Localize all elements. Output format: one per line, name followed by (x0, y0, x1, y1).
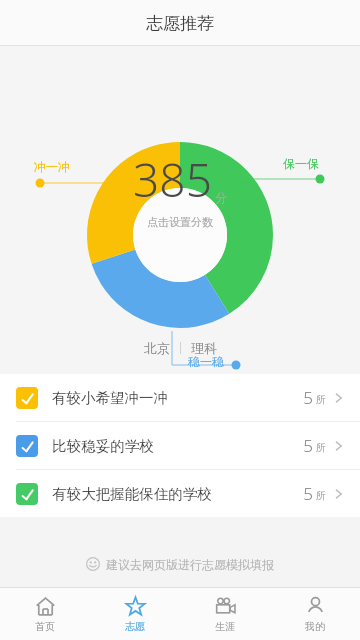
button[interactable]: 我的 (270, 588, 360, 640)
button[interactable]: 比较稳妥的学校 (0, 422, 360, 469)
button[interactable]: 有较小希望冲一冲 (0, 374, 360, 421)
staticText: 分 (215, 190, 227, 205)
staticText: 建议去网页版进行志愿模拟填报 (106, 557, 274, 572)
staticText: 5 (303, 386, 313, 409)
staticText: 385 (133, 148, 212, 211)
staticText: 我的 (305, 620, 325, 633)
staticText: 点击设置分数 (147, 215, 213, 229)
button[interactable]: 有较大把握能保住的学校 (0, 470, 360, 517)
staticText: 志愿推荐 (146, 13, 214, 34)
staticText: 所 (316, 489, 326, 502)
staticText: 志愿 (125, 620, 145, 633)
staticText: 北京 (144, 340, 170, 356)
button[interactable]: 志愿 (90, 588, 180, 640)
staticText: 有较大把握能保住的学校 (52, 485, 212, 503)
staticText: 所 (316, 441, 326, 454)
staticText: 保一保 (283, 156, 319, 171)
staticText: 稳一稳 (188, 354, 224, 369)
staticText: 5 (303, 434, 313, 457)
staticText: 冲一冲 (34, 159, 70, 174)
button[interactable]: 首页 (0, 588, 90, 640)
staticText: 5 (303, 482, 313, 505)
staticText: 有较小希望冲一冲 (52, 389, 168, 407)
button[interactable]: 生涯 (180, 588, 270, 640)
staticText: 比较稳妥的学校 (52, 437, 154, 455)
staticText: 所 (316, 393, 326, 406)
staticText: 理科 (191, 340, 217, 356)
staticText: 生涯 (215, 620, 235, 633)
staticText: 首页 (35, 620, 55, 633)
